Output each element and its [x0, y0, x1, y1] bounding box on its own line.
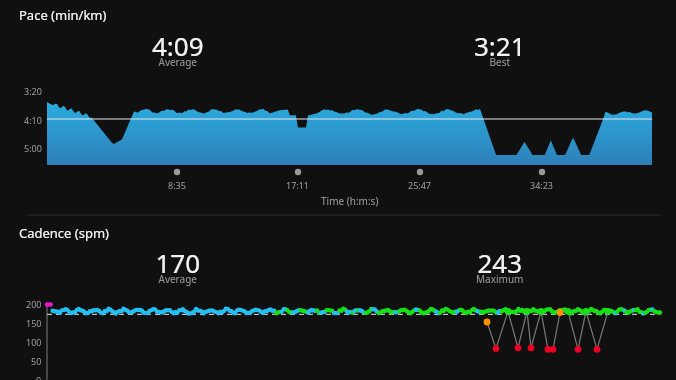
- button[interactable]: [0, 0, 676, 380]
